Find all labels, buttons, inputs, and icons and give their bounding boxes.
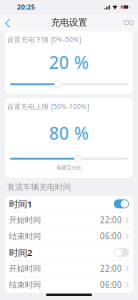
staticText: 电量百分比	[56, 164, 81, 171]
staticText: 22:00	[100, 263, 122, 274]
staticText: 设置充电上限 [50%-100%]	[7, 102, 89, 111]
button[interactable]: 时间1	[5, 196, 133, 212]
staticText: 设置充电下限 [0%-50%]	[7, 35, 81, 44]
button[interactable]: 时间2	[5, 245, 133, 260]
staticText: 直流车辆充电时间	[7, 182, 71, 192]
staticText: 结束时间	[9, 231, 41, 241]
staticText: 06:00	[100, 279, 122, 290]
staticText: 20 %	[49, 51, 89, 74]
staticText: 06:00	[100, 231, 122, 241]
staticText: 20:25	[17, 3, 35, 11]
staticText: 开始时间	[9, 215, 41, 225]
staticText: 结束时间	[9, 280, 41, 290]
button[interactable]: 结束时间	[5, 228, 133, 244]
button[interactable]: 结束时间	[5, 277, 133, 293]
staticText: 80 %	[49, 121, 89, 144]
button[interactable]: 开始时间	[5, 261, 133, 276]
button[interactable]: Back	[0, 14, 15, 31]
button[interactable]: More	[119, 14, 138, 31]
staticText: 22:00	[100, 215, 122, 225]
staticText: 开始时间	[9, 264, 41, 273]
staticText: 时间1	[9, 198, 32, 210]
button[interactable]: 开始时间	[5, 212, 133, 228]
staticText: 充电设置	[51, 17, 87, 28]
staticText: 时间2	[9, 246, 32, 259]
